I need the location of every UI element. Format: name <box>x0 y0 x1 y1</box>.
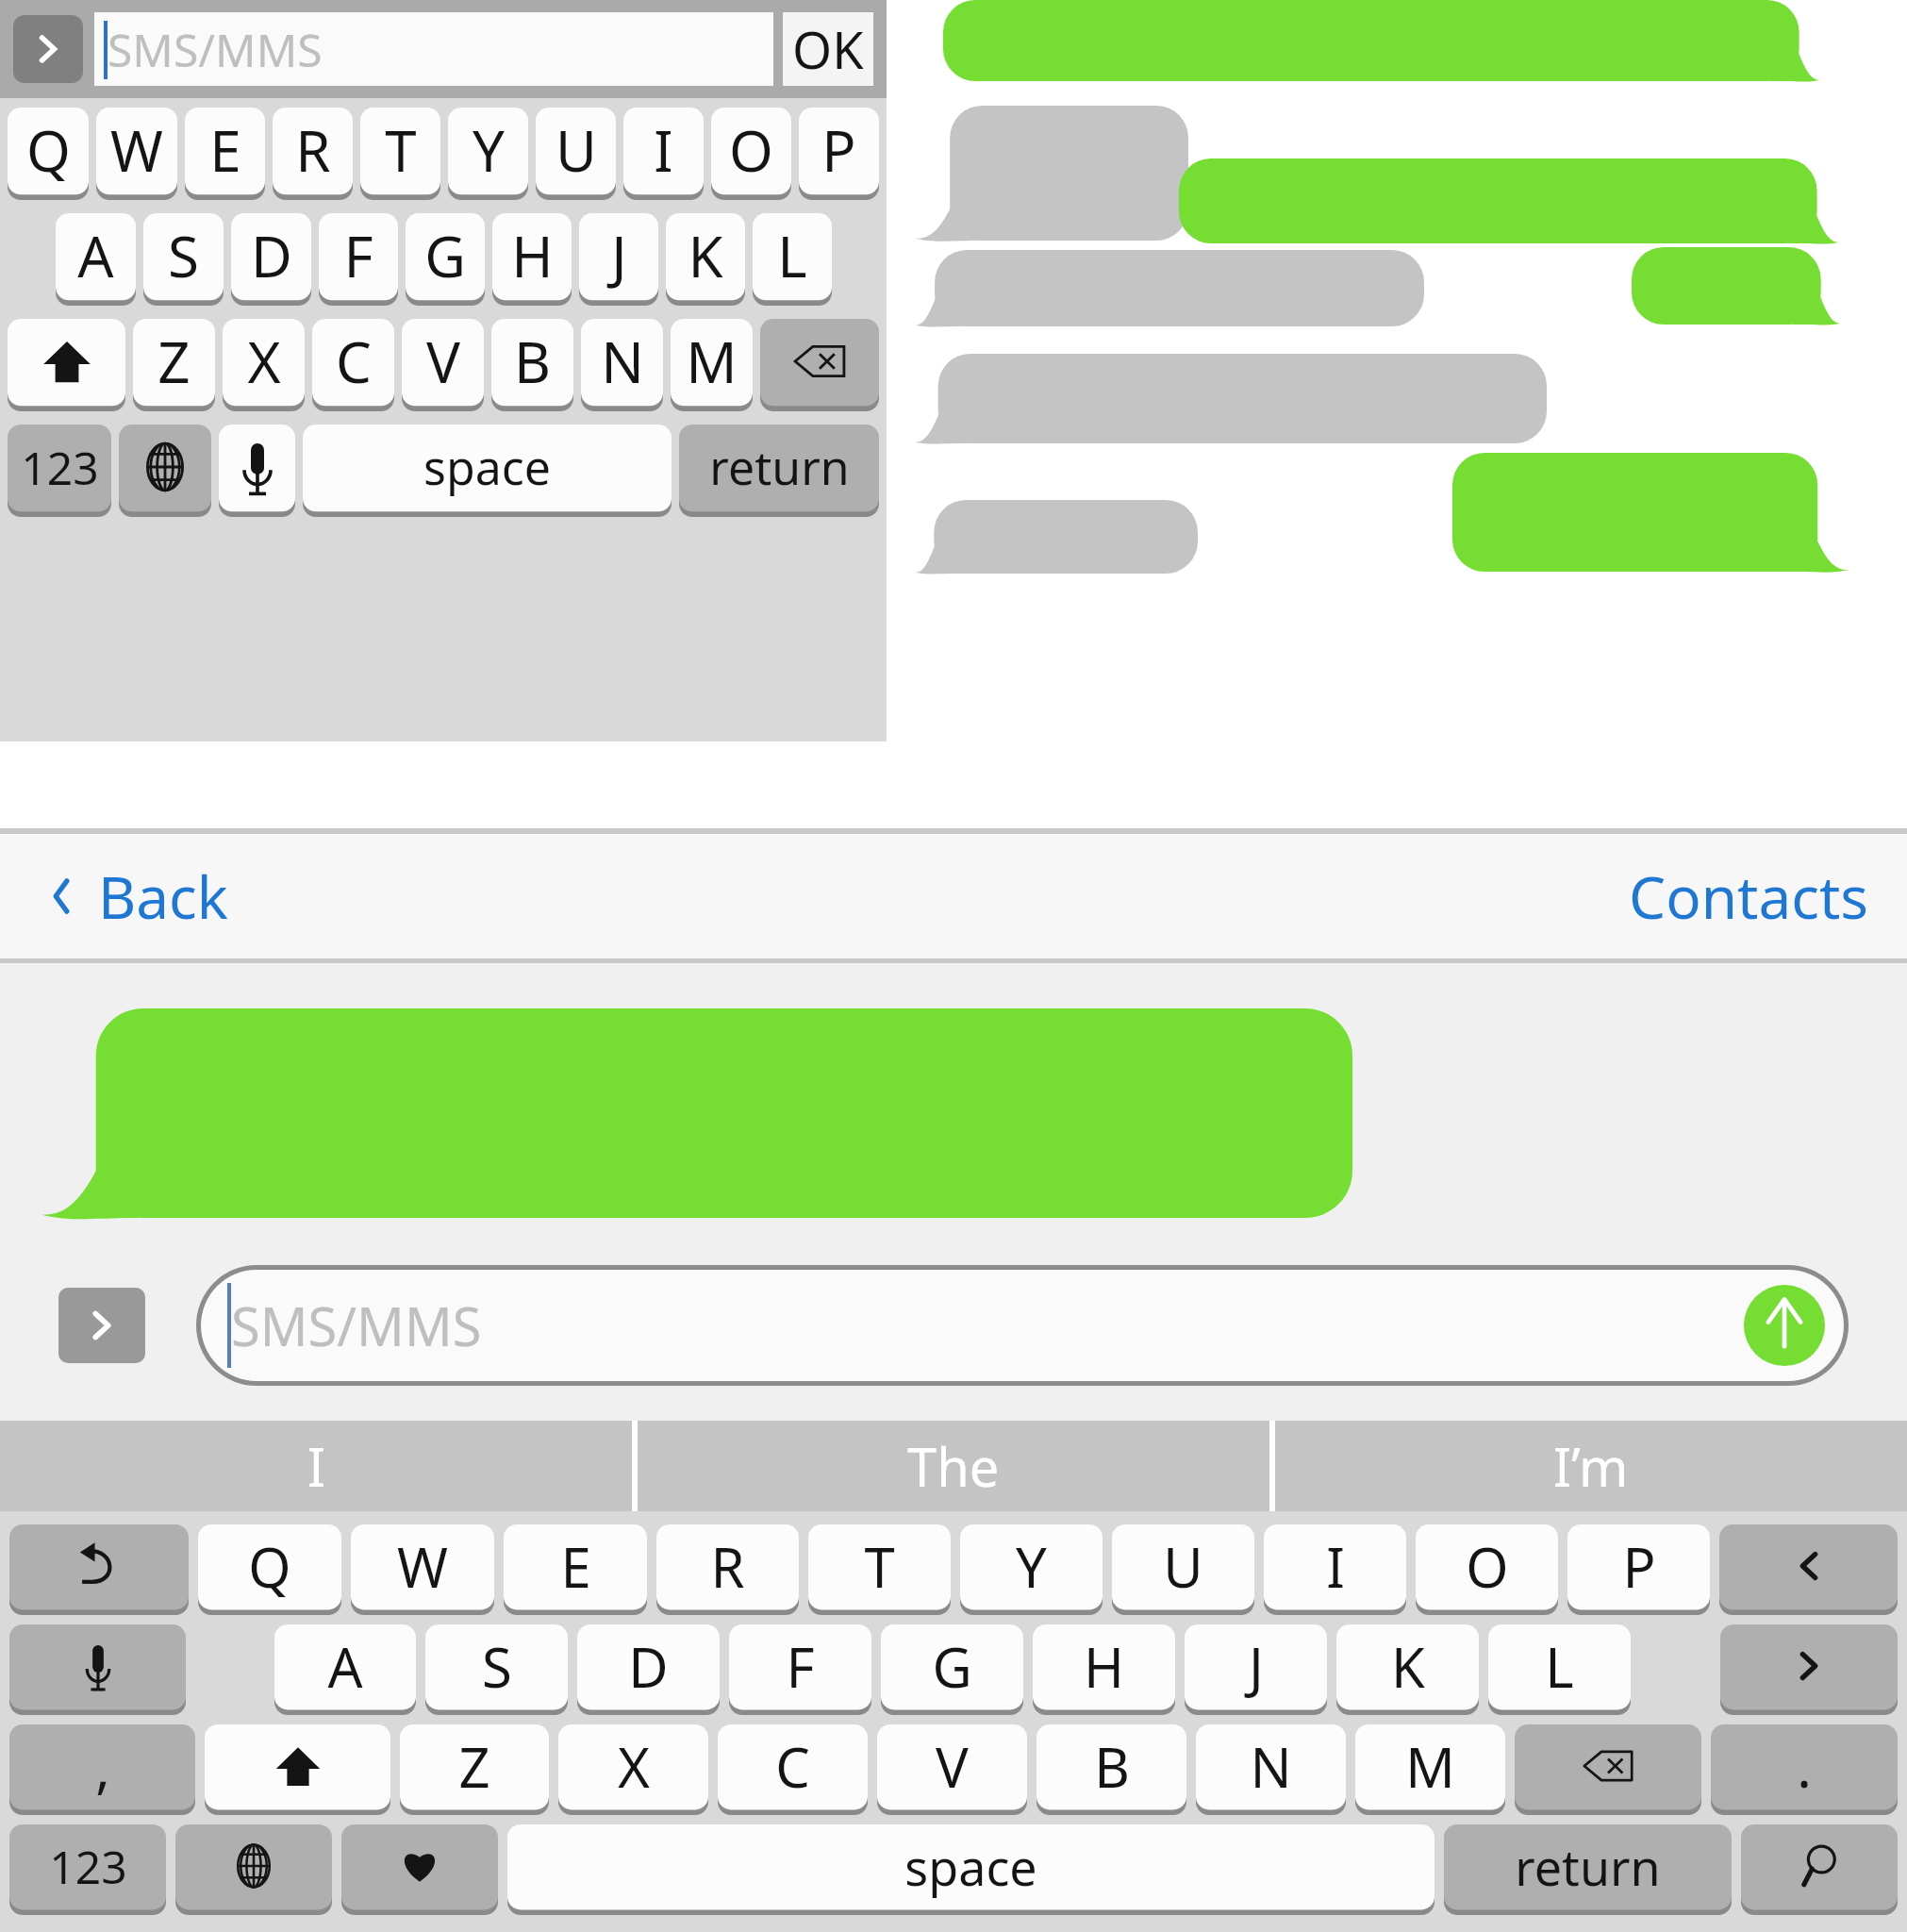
button[interactable]: O <box>711 108 791 200</box>
button[interactable]: , <box>9 1724 195 1815</box>
button[interactable]: D <box>231 213 311 306</box>
button[interactable]: I’m <box>1275 1421 1907 1511</box>
button[interactable]: return <box>1444 1824 1732 1915</box>
staticText: E <box>209 111 241 189</box>
button[interactable]: W <box>351 1524 494 1615</box>
button[interactable]: I <box>0 1421 632 1511</box>
button[interactable]: Attach <box>58 1288 145 1363</box>
button[interactable]: F <box>319 213 398 306</box>
button[interactable]: Contacts <box>1629 857 1869 936</box>
button[interactable]: 123 <box>9 1824 166 1915</box>
button[interactable]: 123 <box>8 425 111 517</box>
button[interactable]: Z <box>133 319 215 411</box>
button[interactable]: C <box>718 1724 868 1815</box>
button[interactable]: U <box>536 108 616 200</box>
button[interactable] <box>1741 1824 1898 1915</box>
button[interactable]: V <box>877 1724 1027 1815</box>
staticText: X <box>247 323 281 400</box>
button[interactable]: C <box>312 319 394 411</box>
button[interactable] <box>8 319 125 411</box>
button[interactable]: R <box>273 108 353 200</box>
button[interactable]: T <box>808 1524 951 1615</box>
button[interactable] <box>205 1724 390 1815</box>
button[interactable]: P <box>1567 1524 1710 1615</box>
button[interactable]: G <box>406 213 485 306</box>
button[interactable]: E <box>504 1524 647 1615</box>
staticText: G <box>424 217 466 294</box>
button[interactable]: return <box>679 425 879 517</box>
button[interactable]: Send options <box>13 15 83 83</box>
button[interactable]: J <box>579 213 658 306</box>
staticText: Q <box>248 1529 291 1604</box>
button[interactable]: Q <box>198 1524 341 1615</box>
button[interactable]: K <box>666 213 745 306</box>
button[interactable]: Y <box>448 108 528 200</box>
button[interactable]: B <box>1036 1724 1186 1815</box>
button[interactable] <box>1720 1624 1898 1715</box>
staticText: Z <box>458 1729 490 1804</box>
button[interactable]: A <box>56 213 136 306</box>
button[interactable]: SMS/MMS <box>94 12 773 86</box>
button[interactable] <box>219 425 295 517</box>
button[interactable] <box>119 425 211 517</box>
button[interactable]: K <box>1336 1624 1479 1715</box>
button[interactable]: Send <box>1744 1285 1825 1366</box>
button[interactable]: D <box>577 1624 720 1715</box>
button[interactable]: R <box>656 1524 799 1615</box>
button[interactable]: Z <box>400 1724 549 1815</box>
button[interactable]: X <box>223 319 305 411</box>
button[interactable] <box>175 1824 332 1915</box>
button[interactable]: F <box>729 1624 871 1715</box>
button[interactable]: Q <box>8 108 89 200</box>
button[interactable]: A <box>274 1624 416 1715</box>
button[interactable] <box>1515 1724 1701 1815</box>
button[interactable]: L <box>753 213 832 306</box>
button[interactable] <box>1719 1524 1898 1615</box>
button[interactable] <box>341 1824 498 1915</box>
button[interactable]: S <box>425 1624 568 1715</box>
button[interactable]: X <box>558 1724 708 1815</box>
button[interactable]: G <box>881 1624 1023 1715</box>
staticText: . <box>1797 1729 1812 1804</box>
staticText: L <box>777 217 807 294</box>
button[interactable] <box>760 319 879 411</box>
button[interactable]: B <box>491 319 573 411</box>
button[interactable]: U <box>1112 1524 1254 1615</box>
button[interactable]: O <box>1416 1524 1558 1615</box>
staticText: Z <box>158 323 191 400</box>
button[interactable]: . <box>1711 1724 1898 1815</box>
button[interactable]: T <box>360 108 440 200</box>
button[interactable]: H <box>492 213 572 306</box>
staticText: Y <box>1016 1529 1047 1604</box>
button[interactable]: J <box>1185 1624 1327 1715</box>
button[interactable]: W <box>96 108 177 200</box>
button[interactable]: The <box>638 1421 1269 1511</box>
button[interactable]: M <box>671 319 753 411</box>
button[interactable]: N <box>1196 1724 1346 1815</box>
button[interactable]: Y <box>960 1524 1103 1615</box>
button[interactable]: space <box>507 1824 1434 1915</box>
button[interactable]: M <box>1355 1724 1505 1815</box>
button[interactable]: OK <box>783 12 873 86</box>
button[interactable] <box>9 1524 189 1615</box>
button[interactable]: P <box>799 108 879 200</box>
button[interactable]: I <box>1264 1524 1406 1615</box>
button[interactable]: Back <box>41 857 228 936</box>
staticText: O <box>729 111 773 189</box>
staticText: P <box>821 111 856 189</box>
staticText: 123 <box>49 1836 127 1897</box>
button[interactable]: N <box>581 319 663 411</box>
button[interactable] <box>9 1624 186 1715</box>
button[interactable]: S <box>143 213 224 306</box>
button[interactable]: H <box>1033 1624 1175 1715</box>
button[interactable]: E <box>185 108 265 200</box>
staticText: I <box>654 111 673 189</box>
button[interactable]: space <box>303 425 672 517</box>
button[interactable]: L <box>1488 1624 1631 1715</box>
button[interactable]: SMS/MMS <box>201 1270 1844 1381</box>
staticText: T <box>385 111 417 189</box>
button[interactable]: V <box>402 319 484 411</box>
staticText: K <box>688 217 723 294</box>
staticText: R <box>295 111 331 189</box>
button[interactable]: I <box>623 108 704 200</box>
